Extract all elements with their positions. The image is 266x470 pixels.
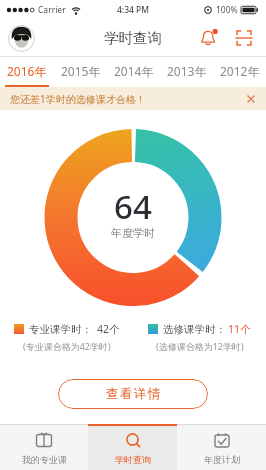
staticText: 选修课学时： [163, 323, 226, 336]
staticText: 学时查询 [104, 29, 162, 47]
button[interactable]: 我的专业课 [0, 424, 88, 470]
staticText: 64 [114, 184, 152, 229]
button[interactable]: 2013年 [160, 57, 213, 87]
staticText: 11个 [228, 322, 251, 336]
staticText: 4:34 PM [117, 4, 150, 16]
staticText: 2014年 [114, 63, 154, 79]
button[interactable]: 2012年 [213, 57, 266, 87]
button[interactable]: 学时查询 [88, 424, 177, 470]
button[interactable]: 2014年 [107, 57, 160, 87]
button[interactable] [198, 27, 220, 49]
button[interactable]: 查看详情 [58, 379, 208, 409]
staticText: 专业课学时： [29, 323, 92, 336]
staticText: 42个 [97, 322, 120, 336]
button[interactable]: 2015年 [54, 57, 107, 87]
staticText: 学时查询 [115, 454, 151, 465]
staticText: (选修课合格为12学时) [156, 340, 244, 352]
staticText: 2012年 [220, 63, 260, 79]
staticText: 查看详情 [105, 386, 161, 402]
button[interactable] [8, 25, 35, 52]
staticText: Carrier [38, 4, 66, 16]
staticText: 年度学时 [111, 226, 155, 240]
staticText: 我的专业课 [22, 454, 67, 465]
button[interactable] [244, 92, 258, 106]
staticText: 2015年 [61, 63, 101, 79]
staticText: 2013年 [167, 63, 207, 79]
staticText: 2016年 [7, 63, 47, 79]
button[interactable]: 年度计划 [177, 424, 266, 470]
staticText: 100% [216, 4, 238, 16]
button[interactable]: 2016年 [0, 57, 54, 87]
staticText: 您还差1学时的选修课才合格！ [10, 92, 146, 106]
staticText: (专业课合格为42学时) [23, 340, 111, 352]
staticText: 年度计划 [204, 454, 240, 465]
button[interactable] [234, 28, 254, 48]
